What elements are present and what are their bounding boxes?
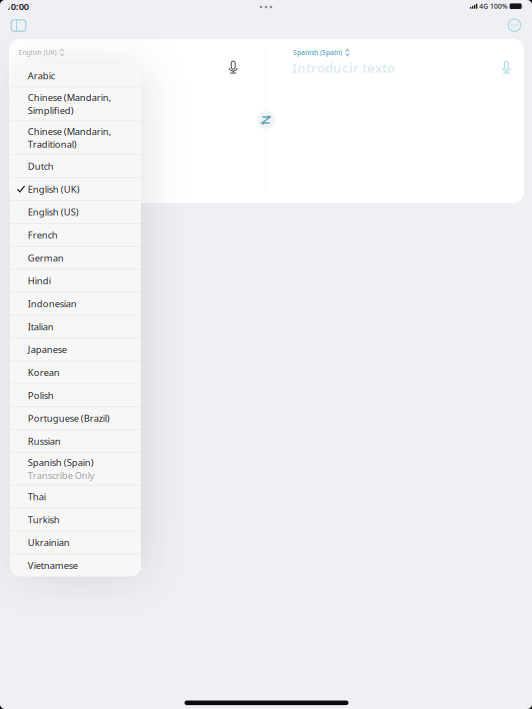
staticText: Spanish (Spain) — [293, 48, 342, 57]
staticText: English (UK) — [18, 48, 56, 57]
staticText: Introducir texto — [292, 59, 395, 76]
button[interactable]: Show sidebar — [3, 12, 33, 38]
staticText: 4G — [479, 2, 488, 11]
button[interactable]: Ukrainian — [10, 531, 141, 554]
button[interactable]: Turkish — [10, 508, 141, 531]
button[interactable]: Russian — [10, 430, 141, 452]
button[interactable]: English (UK) — [18, 46, 64, 58]
staticText: 100% — [490, 2, 508, 11]
button[interactable]: Arabic — [10, 64, 141, 87]
staticText: Transcribe Only — [28, 469, 95, 481]
button[interactable]: English (UK) — [10, 178, 141, 200]
staticText: Hindi — [28, 274, 51, 287]
button[interactable]: Spanish (Spain) — [10, 453, 141, 485]
staticText: Vietnamese — [28, 559, 78, 572]
button[interactable]: Korean — [10, 361, 141, 383]
staticText: German — [28, 252, 64, 264]
button[interactable]: Swap languages — [257, 111, 275, 129]
button[interactable]: Italian — [10, 315, 141, 338]
button[interactable]: Start listening, English — [220, 54, 246, 80]
staticText: 10:00 — [6, 0, 29, 13]
button[interactable]: French — [10, 224, 141, 246]
staticText: Traditional) — [28, 138, 77, 150]
staticText: Indonesian — [28, 297, 77, 310]
staticText: Polish — [28, 389, 54, 401]
button[interactable]: Dutch — [10, 155, 141, 177]
button[interactable]: Start listening, Spanish — [493, 54, 519, 80]
button[interactable]: Chinese (Mandarin, — [10, 121, 141, 154]
staticText: Chinese (Mandarin, — [28, 125, 112, 137]
staticText: English (UK) — [28, 183, 80, 195]
staticText: English (US) — [28, 206, 79, 218]
button[interactable]: Japanese — [10, 338, 141, 361]
button[interactable]: Chinese (Mandarin, — [10, 87, 141, 120]
staticText: Chinese (Mandarin, — [28, 91, 112, 104]
staticText: Portuguese (Brazil) — [28, 412, 110, 424]
staticText: Japanese — [28, 343, 67, 356]
button[interactable]: Portuguese (Brazil) — [10, 407, 141, 429]
button[interactable]: Hindi — [10, 269, 141, 292]
staticText: French — [28, 229, 58, 241]
button[interactable]: English (US) — [10, 201, 141, 223]
button[interactable]: Spanish (Spain) — [293, 46, 350, 58]
staticText: Spanish (Spain) — [28, 456, 94, 469]
staticText: Thai — [28, 490, 46, 503]
staticText: Russian — [28, 435, 61, 447]
staticText: Korean — [28, 366, 60, 379]
staticText: Simplified) — [28, 104, 74, 117]
button[interactable]: Vietnamese — [10, 554, 141, 577]
button[interactable]: Polish — [10, 384, 141, 406]
staticText: Ukrainian — [28, 536, 70, 549]
button[interactable]: More options — [499, 12, 529, 38]
button[interactable]: German — [10, 247, 141, 269]
button[interactable]: Indonesian — [10, 292, 141, 315]
staticText: Italian — [28, 320, 54, 333]
staticText: Turkish — [28, 513, 60, 526]
staticText: Dutch — [28, 160, 54, 172]
button[interactable]: Thai — [10, 485, 141, 508]
staticText: Arabic — [28, 69, 55, 82]
